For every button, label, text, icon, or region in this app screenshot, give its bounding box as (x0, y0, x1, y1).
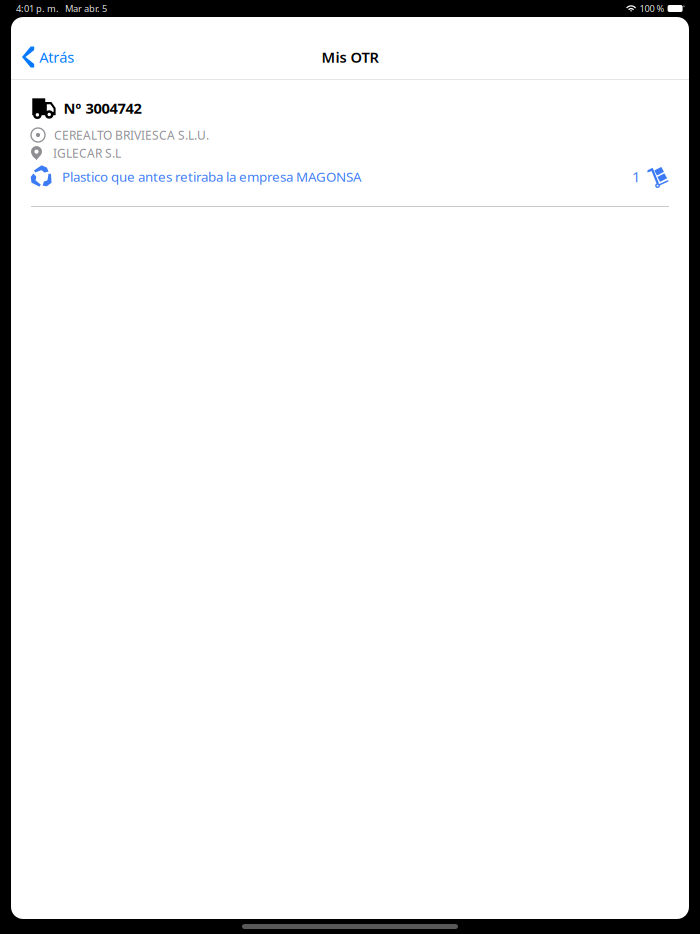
staticText: Atrás (39, 47, 74, 67)
staticText: CEREALTO BRIVIESCA S.L.U. (54, 127, 209, 143)
button[interactable]: Atrás (11, 35, 88, 79)
staticText: Mis OTR (321, 47, 378, 67)
button[interactable]: Nº 3004742 (11, 80, 689, 207)
staticText: 4:01 p. m. Mar abr. 5 (16, 2, 107, 15)
staticText: 1 (632, 167, 640, 186)
staticText: Plastico que antes retiraba la empresa M… (62, 168, 362, 185)
staticText: IGLECAR S.L (53, 145, 121, 161)
staticText: Nº 3004742 (63, 98, 141, 118)
staticText: 100 % (640, 2, 665, 15)
